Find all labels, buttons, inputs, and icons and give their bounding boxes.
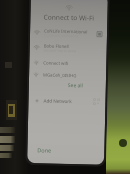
staticText: CoNLife International	[44, 27, 88, 34]
staticText: Connect to Wi-Fi	[30, 12, 107, 23]
staticText: Connect wifi	[43, 59, 68, 66]
button[interactable]: CoNLife International	[30, 26, 107, 40]
button[interactable]: MGaCeh_0I5IHG	[29, 70, 106, 80]
staticText: Done	[37, 146, 51, 154]
staticText: MGaCeh_0I5IHG	[43, 71, 77, 78]
button[interactable]: Bobo Flonell	[30, 41, 107, 55]
button[interactable]: See all	[66, 81, 86, 90]
button[interactable]: Connect wifi	[29, 58, 106, 68]
button[interactable]: Scan QR code	[93, 99, 99, 105]
button[interactable]: Add Network	[28, 95, 106, 107]
staticText: Add Network	[43, 97, 72, 104]
staticText: Bobo Flonell	[44, 42, 69, 49]
button[interactable]: Done	[35, 145, 53, 155]
staticText: See all	[68, 82, 84, 89]
